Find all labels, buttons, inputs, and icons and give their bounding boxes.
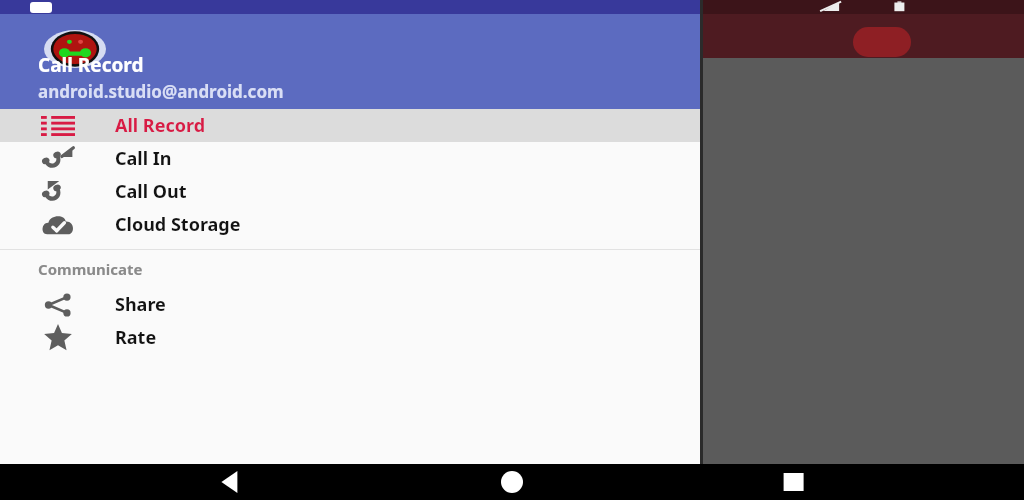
- button[interactable]: Record: [853, 27, 911, 57]
- button[interactable]: Share: [0, 288, 700, 321]
- staticText: Rate: [115, 325, 157, 350]
- staticText: android.studio@android.com: [38, 80, 284, 103]
- staticText: All Record: [115, 113, 206, 138]
- button[interactable]: Call Out: [0, 175, 700, 208]
- staticText: Share: [115, 292, 166, 317]
- staticText: Cloud Storage: [115, 212, 241, 237]
- button[interactable]: Cloud Storage: [0, 208, 700, 241]
- staticText: Call In: [115, 146, 172, 171]
- button[interactable]: Call In: [0, 142, 700, 175]
- button[interactable]: All Record: [0, 109, 700, 142]
- staticText: Communicate: [38, 259, 143, 279]
- staticText: Call Record: [38, 52, 144, 78]
- button[interactable]: Rate: [0, 321, 700, 354]
- staticText: Call Out: [115, 179, 187, 204]
